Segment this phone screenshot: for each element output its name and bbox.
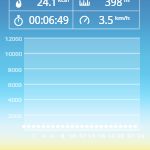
button[interactable]: Calories burned [9,0,73,11]
staticText: 16 [98,132,105,140]
staticText: 2000 [8,112,22,120]
staticText: 10000 [5,50,23,58]
staticText: 8000 [8,66,22,74]
button[interactable]: Average speed [73,11,140,29]
staticText: 8 [61,132,65,140]
staticText: 14 [88,132,95,140]
button[interactable]: Duration [9,11,73,29]
button[interactable]: Distance [73,0,140,11]
staticText: kcal [58,0,69,4]
staticText: 10 [69,132,76,140]
staticText: 4000 [8,96,22,104]
staticText: 398 [105,0,123,9]
staticText: 22 [127,132,134,140]
staticText: 6 [51,132,55,140]
staticText: 00:06:49 [29,13,69,27]
staticText: km/h [115,14,130,22]
staticText: 18 [108,132,115,140]
staticText: 24 [137,132,144,140]
staticText: 4 [42,132,46,140]
staticText: 24.1 [37,0,57,9]
staticText: 20 [117,132,124,140]
staticText: 2 [32,132,36,140]
staticText: m [124,0,130,4]
staticText: 6000 [8,81,22,89]
staticText: 3.5 [99,13,114,27]
staticText: 12000 [5,35,23,43]
staticText: 12 [79,132,86,140]
